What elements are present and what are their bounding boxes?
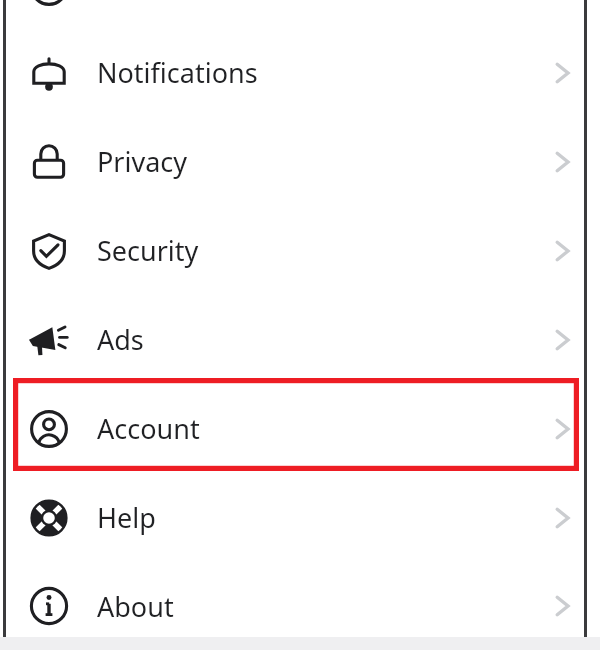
other: Open Help bbox=[547, 503, 577, 533]
button[interactable]: Account bbox=[0, 384, 600, 473]
staticText: Help bbox=[97, 499, 156, 536]
staticText: Notifications bbox=[97, 54, 258, 91]
button[interactable]: Profile bbox=[0, 0, 600, 28]
other: Open About bbox=[547, 591, 577, 621]
button[interactable]: Privacy bbox=[0, 117, 600, 206]
other: Open Privacy bbox=[547, 147, 577, 177]
button[interactable]: Help bbox=[0, 473, 600, 562]
other: Open Notifications bbox=[547, 58, 577, 88]
other: Open Security bbox=[547, 236, 577, 266]
staticText: Security bbox=[97, 232, 199, 269]
staticText: Ads bbox=[97, 321, 144, 358]
button[interactable]: Security bbox=[0, 206, 600, 295]
other: Open Ads bbox=[547, 325, 577, 355]
staticText: Account bbox=[97, 410, 200, 447]
button[interactable]: About bbox=[0, 562, 600, 650]
other: Open Account bbox=[547, 414, 577, 444]
staticText: Privacy bbox=[97, 143, 188, 180]
button[interactable]: Ads bbox=[0, 295, 600, 384]
button[interactable]: Notifications bbox=[0, 28, 600, 117]
staticText: About bbox=[97, 588, 174, 625]
